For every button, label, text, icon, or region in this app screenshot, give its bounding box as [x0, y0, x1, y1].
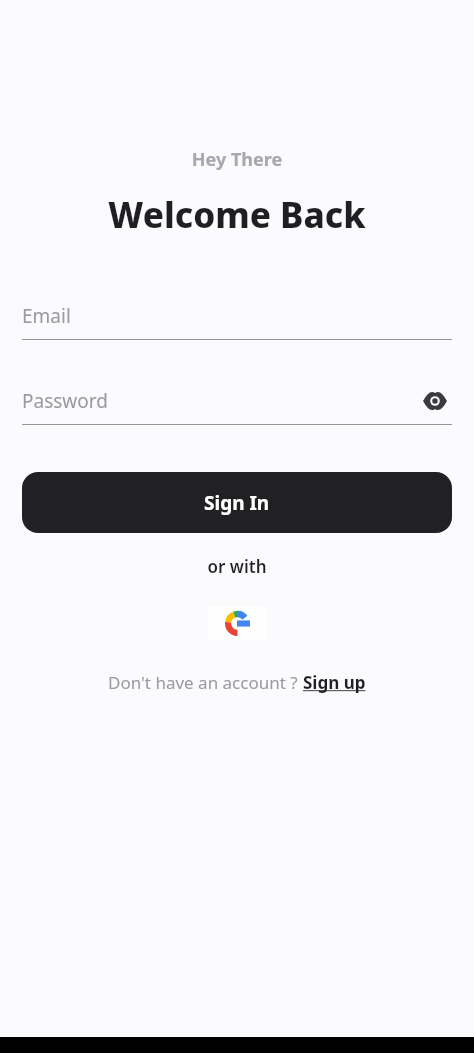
- staticText: Password: [22, 388, 108, 414]
- button[interactable]: Sign up: [303, 671, 366, 694]
- staticText: Hey There: [0, 147, 474, 172]
- button[interactable]: Sign In: [22, 472, 452, 533]
- staticText: Welcome Back: [0, 191, 474, 239]
- staticText: Sign up: [303, 671, 366, 694]
- button[interactable]: Password: [22, 382, 452, 425]
- button[interactable]: Show password: [418, 384, 452, 418]
- staticText: Sign In: [204, 490, 270, 516]
- staticText: Don't have an account ?: [108, 671, 303, 694]
- button[interactable]: Sign in with Google: [208, 606, 267, 640]
- staticText: or with: [0, 555, 474, 578]
- button[interactable]: Email: [22, 297, 452, 340]
- staticText: Email: [22, 303, 71, 329]
